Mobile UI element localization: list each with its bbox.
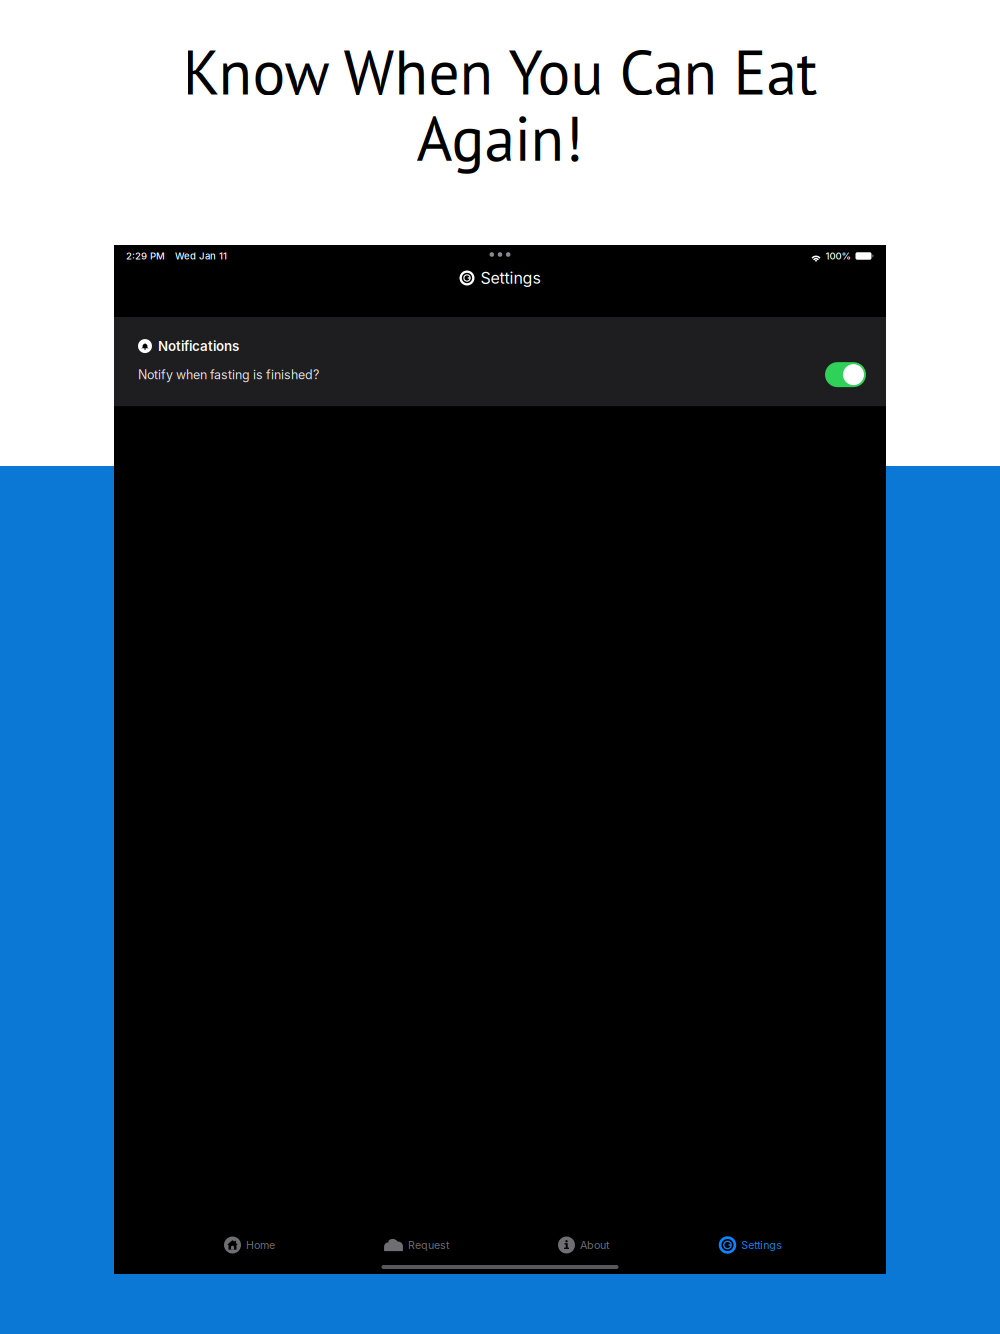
button[interactable]: Settings (667, 1230, 834, 1260)
staticText: 100% (825, 250, 851, 262)
button[interactable]: Request (333, 1230, 500, 1260)
staticText: 2:29 PM (126, 250, 165, 262)
staticText: Notify when fasting is finished? (138, 367, 319, 382)
button[interactable]: Notify when fasting is finished (825, 362, 866, 387)
staticText: Again! (416, 98, 583, 178)
staticText: Wed Jan 11 (175, 250, 227, 262)
staticText: Settings (480, 268, 540, 288)
staticText: Home (246, 1238, 275, 1251)
staticText: Request (408, 1238, 449, 1251)
staticText: About (580, 1238, 609, 1251)
button[interactable]: Home (166, 1230, 333, 1260)
staticText: Settings (741, 1238, 782, 1251)
staticText: Know When You Can Eat (182, 32, 817, 111)
button[interactable]: About (500, 1230, 667, 1260)
staticText: Notifications (158, 338, 239, 354)
